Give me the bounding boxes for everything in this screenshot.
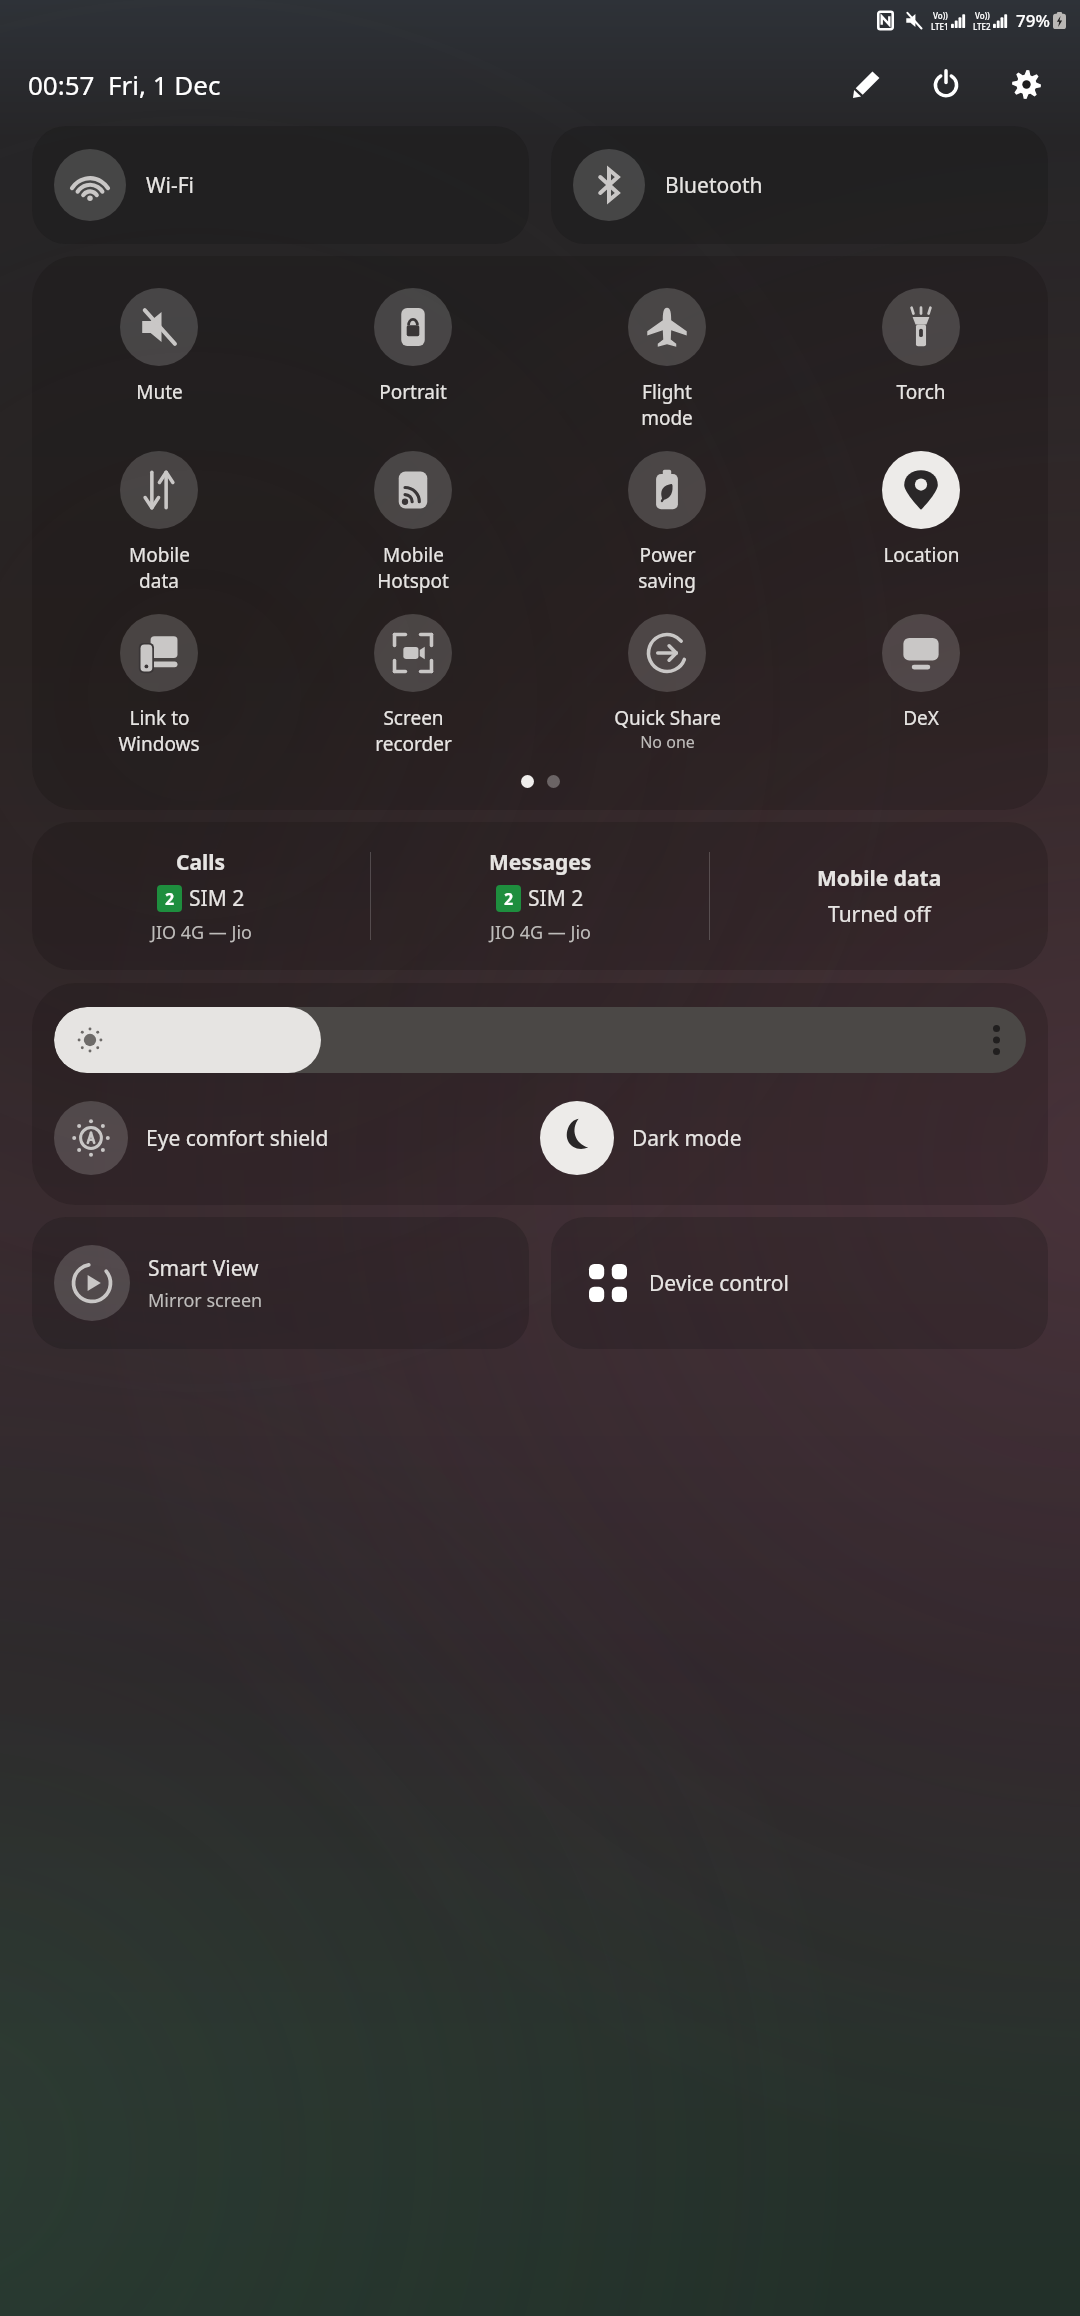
- staticText: 79%: [1016, 9, 1050, 32]
- button[interactable]: Smart View: [32, 1217, 529, 1349]
- staticText: Mobile data: [817, 864, 942, 893]
- staticText: Windows: [118, 731, 200, 757]
- staticText: Bluetooth: [665, 171, 763, 200]
- button[interactable]: Eye comfort shield: [54, 1101, 540, 1175]
- button[interactable]: Brightness: [54, 1007, 1026, 1073]
- staticText: Messages: [489, 848, 592, 877]
- staticText: mode: [641, 405, 693, 431]
- staticText: Torch: [896, 379, 946, 405]
- staticText: 00:57: [28, 67, 95, 102]
- staticText: Smart View: [148, 1254, 259, 1283]
- button[interactable]: Edit: [840, 58, 892, 110]
- staticText: Hotspot: [377, 568, 449, 594]
- button[interactable]: Torch: [794, 284, 1048, 409]
- button[interactable]: Mobile: [32, 447, 286, 598]
- button[interactable]: Portrait: [286, 284, 540, 409]
- staticText: DeX: [903, 705, 939, 731]
- staticText: Wi-Fi: [146, 171, 195, 200]
- staticText: LTE1: [931, 21, 949, 32]
- button[interactable]: Device control: [551, 1217, 1048, 1349]
- button[interactable]: DeX: [794, 610, 1048, 735]
- staticText: Turned off: [828, 900, 931, 929]
- button[interactable]: Messages: [371, 848, 709, 945]
- staticText: JIO 4G — Jio: [490, 920, 591, 945]
- staticText: Screen: [383, 705, 444, 731]
- button[interactable]: Calls: [32, 848, 370, 945]
- staticText: Mirror screen: [148, 1288, 263, 1313]
- staticText: Dark mode: [632, 1124, 742, 1153]
- staticText: Vo)): [933, 10, 948, 21]
- button[interactable]: Wi-Fi: [32, 126, 529, 244]
- staticText: Mobile: [383, 542, 444, 568]
- button[interactable]: Mobile: [286, 447, 540, 598]
- button[interactable]: Power: [540, 447, 794, 598]
- staticText: Power: [639, 542, 696, 568]
- staticText: data: [139, 568, 179, 594]
- staticText: saving: [638, 568, 696, 594]
- staticText: Eye comfort shield: [146, 1124, 329, 1153]
- staticText: Mobile: [129, 542, 190, 568]
- button[interactable]: Location: [794, 447, 1048, 572]
- staticText: Mute: [136, 379, 183, 405]
- staticText: LTE2: [973, 21, 991, 32]
- staticText: Flight: [642, 379, 692, 405]
- button[interactable]: Mute: [32, 284, 286, 409]
- staticText: Quick Share: [614, 705, 721, 731]
- staticText: Device control: [649, 1269, 789, 1298]
- staticText: 2: [504, 888, 514, 910]
- button[interactable]: Flight: [540, 284, 794, 435]
- staticText: No one: [640, 731, 695, 753]
- staticText: Location: [883, 542, 960, 568]
- button[interactable]: Settings: [1000, 58, 1052, 110]
- staticText: recorder: [375, 731, 452, 757]
- staticText: SIM 2: [528, 884, 584, 913]
- button[interactable]: Bluetooth: [551, 126, 1048, 244]
- button[interactable]: Quick Share: [540, 610, 794, 757]
- staticText: JIO 4G — Jio: [151, 920, 252, 945]
- staticText: SIM 2: [189, 884, 245, 913]
- staticText: Vo)): [975, 10, 990, 21]
- button[interactable]: Mobile data: [710, 864, 1048, 929]
- staticText: Portrait: [379, 379, 447, 405]
- staticText: Link to: [129, 705, 190, 731]
- staticText: 2: [165, 888, 175, 910]
- staticText: Calls: [176, 848, 226, 877]
- button[interactable]: Screen: [286, 610, 540, 761]
- staticText: Fri, 1 Dec: [108, 67, 221, 102]
- button[interactable]: Link to: [32, 610, 286, 761]
- button[interactable]: Power off: [920, 58, 972, 110]
- button[interactable]: Dark mode: [540, 1101, 1026, 1175]
